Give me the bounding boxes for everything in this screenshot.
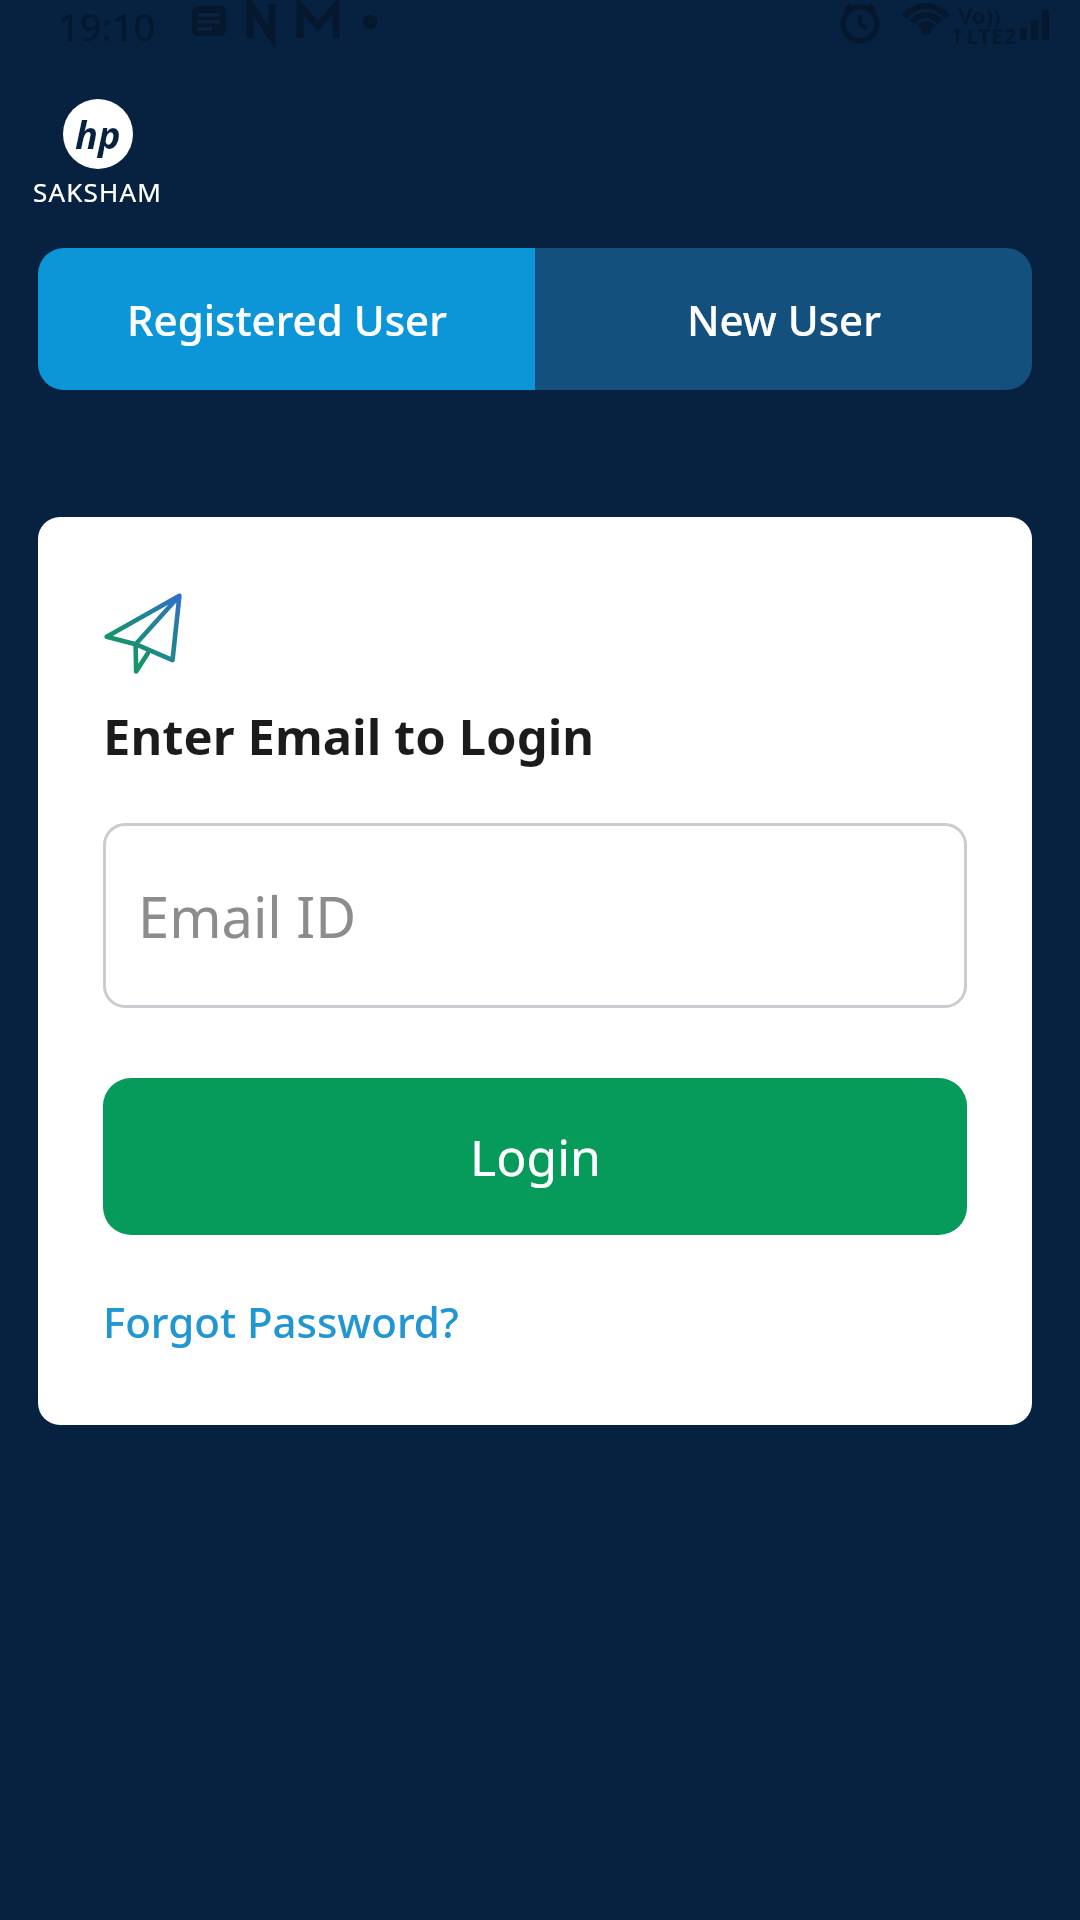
button[interactable]: Login	[103, 1078, 967, 1235]
staticText: New User	[687, 291, 881, 348]
staticText: Enter Email to Login	[103, 703, 595, 770]
button[interactable]: Email ID	[103, 823, 967, 1008]
staticText: ↑LTE2	[948, 20, 1016, 50]
staticText: SAKSHAM	[33, 174, 163, 209]
staticText: 19:10	[58, 0, 156, 48]
button[interactable]: New User	[535, 248, 1032, 390]
staticText: hp	[75, 108, 121, 160]
staticText: Login	[470, 1123, 601, 1191]
staticText: Email ID	[138, 878, 357, 954]
button[interactable]: Registered User	[38, 248, 535, 390]
button[interactable]: Forgot Password?	[103, 1293, 459, 1350]
staticText: Vo))	[958, 0, 1001, 30]
staticText: Registered User	[127, 291, 447, 348]
